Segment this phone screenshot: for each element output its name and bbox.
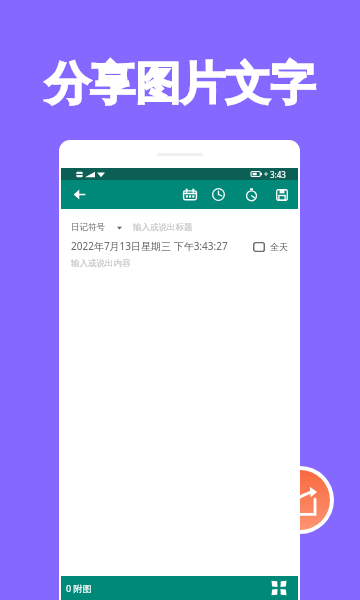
staticText: 3:43 bbox=[270, 169, 286, 180]
button[interactable]: Back bbox=[70, 185, 89, 204]
button[interactable]: 全天 bbox=[253, 241, 288, 252]
button[interactable]: Calendar bbox=[179, 184, 200, 205]
staticText: 全天 bbox=[270, 241, 288, 252]
button[interactable]: Fullscreen bbox=[269, 578, 289, 598]
staticText: 日记符号 bbox=[71, 222, 105, 233]
button[interactable]: Share bbox=[270, 470, 330, 530]
staticText: 分享图片文字 bbox=[0, 56, 360, 113]
staticText: 输入或说出内容 bbox=[71, 258, 131, 269]
button[interactable]: Clock bbox=[208, 184, 229, 205]
staticText: 0 附图 bbox=[66, 582, 92, 594]
button[interactable]: Timer bbox=[241, 184, 262, 205]
staticText: 输入或说出标题 bbox=[133, 222, 193, 233]
button[interactable]: Save bbox=[271, 184, 292, 205]
staticText: 2022年7月13日星期三 下午3:43:27 bbox=[71, 239, 228, 253]
